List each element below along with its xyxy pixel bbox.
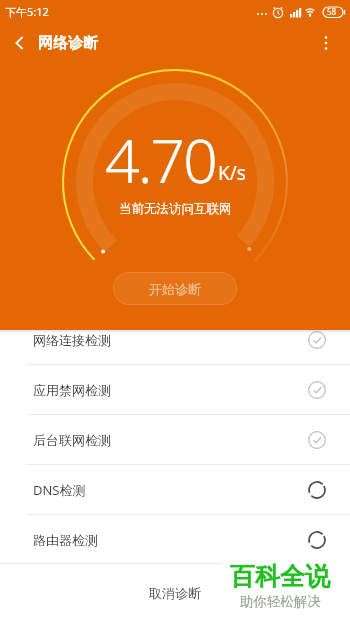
staticText: 4.70 [105, 118, 216, 201]
staticText: 网络诊断 [38, 34, 98, 53]
staticText: 网络连接检测 [33, 332, 308, 348]
button[interactable]: 应用禁网检测 [0, 365, 350, 415]
button[interactable]: 取消诊断 [137, 573, 213, 613]
button[interactable] [6, 29, 34, 57]
button[interactable]: 后台联网检测 [0, 415, 350, 465]
staticText: 应用禁网检测 [33, 382, 308, 398]
button[interactable]: DNS检测 [0, 465, 350, 515]
button[interactable] [316, 33, 336, 53]
staticText: DNS检测 [33, 481, 308, 499]
staticText: 取消诊断 [149, 585, 201, 601]
button[interactable]: 网络连接检测 [0, 315, 350, 365]
staticText: 当前无法访问互联网 [119, 201, 232, 217]
staticText: 58 [327, 6, 337, 17]
staticText: 开始诊断 [149, 281, 201, 297]
staticText: 百科全说 [230, 561, 330, 592]
button[interactable]: 路由器检测 [0, 515, 350, 565]
staticText: 后台联网检测 [33, 432, 308, 448]
staticText: 路由器检测 [33, 532, 308, 548]
staticText: 下午5:12 [5, 4, 49, 19]
staticText: 助你轻松解决 [240, 593, 321, 610]
button[interactable]: 开始诊断 [113, 272, 237, 305]
staticText: K/s [218, 160, 246, 186]
